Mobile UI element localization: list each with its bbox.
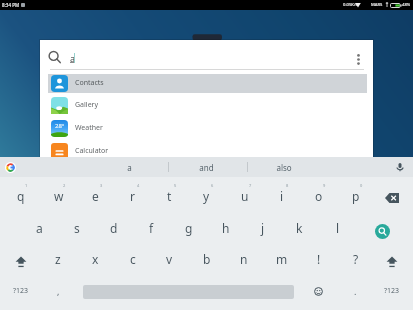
staticText: ?123 bbox=[13, 286, 29, 296]
button[interactable]: and bbox=[168, 157, 244, 177]
button[interactable]: l bbox=[319, 212, 356, 244]
staticText: v bbox=[166, 251, 173, 267]
button[interactable]: Shift bbox=[373, 245, 410, 277]
button[interactable]: q bbox=[2, 180, 39, 212]
button[interactable]: j bbox=[244, 212, 281, 244]
staticText: u bbox=[241, 188, 249, 204]
staticText: Contacts bbox=[75, 78, 104, 88]
staticText: Weather bbox=[75, 123, 103, 133]
staticText: b bbox=[203, 251, 211, 267]
button[interactable]: ?123 bbox=[374, 278, 410, 304]
staticText: and bbox=[199, 162, 214, 173]
button[interactable]: Calculator bbox=[48, 142, 367, 161]
staticText: h bbox=[222, 220, 230, 236]
staticText: c bbox=[130, 251, 136, 267]
button[interactable]: s bbox=[58, 212, 95, 244]
button[interactable]: Emoji bbox=[300, 278, 336, 304]
staticText: Gallery bbox=[75, 100, 99, 110]
button[interactable]: Google bbox=[5, 162, 16, 173]
staticText: 2 bbox=[63, 183, 66, 188]
button[interactable]: z bbox=[39, 243, 76, 275]
button[interactable]: k bbox=[281, 212, 318, 244]
staticText: ?123 bbox=[384, 286, 400, 296]
staticText: 8:34 PM bbox=[2, 2, 20, 8]
staticText: g bbox=[185, 220, 193, 236]
button[interactable]: w bbox=[40, 180, 77, 212]
button[interactable]: Contacts bbox=[48, 74, 367, 93]
staticText: 7 bbox=[249, 183, 252, 188]
staticText: 5 bbox=[174, 183, 177, 188]
button[interactable]: i bbox=[263, 180, 300, 212]
button[interactable]: g bbox=[170, 212, 207, 244]
staticText: o bbox=[315, 188, 323, 204]
button[interactable]: a bbox=[91, 157, 167, 177]
button[interactable]: h bbox=[207, 212, 244, 244]
button[interactable]: y bbox=[188, 180, 225, 212]
staticText: also bbox=[276, 162, 292, 173]
staticText: 1 bbox=[25, 183, 28, 188]
button[interactable]: a bbox=[21, 212, 58, 244]
button[interactable]: t bbox=[151, 180, 188, 212]
staticText: a bbox=[127, 162, 132, 173]
button[interactable]: 28° bbox=[48, 119, 367, 138]
button[interactable]: . bbox=[337, 278, 373, 304]
button[interactable]: r bbox=[114, 180, 151, 212]
button[interactable]: f bbox=[133, 212, 170, 244]
staticText: 0.05K/s bbox=[343, 2, 358, 8]
button[interactable]: ! bbox=[300, 243, 337, 275]
staticText: 48% bbox=[402, 2, 411, 8]
button[interactable]: e bbox=[77, 180, 114, 212]
button[interactable]: ? bbox=[337, 243, 374, 275]
staticText: 0 bbox=[360, 183, 363, 188]
staticText: t bbox=[167, 188, 172, 204]
staticText: 3 bbox=[100, 183, 103, 188]
button[interactable]: b bbox=[188, 243, 225, 275]
staticText: y bbox=[203, 188, 210, 204]
button[interactable]: Voice input bbox=[390, 157, 410, 177]
staticText: 6 bbox=[211, 183, 214, 188]
staticText: d bbox=[110, 220, 118, 236]
staticText: j bbox=[261, 220, 265, 236]
staticText: w bbox=[54, 188, 64, 204]
staticText: ? bbox=[353, 251, 359, 267]
button[interactable]: u bbox=[226, 180, 263, 212]
staticText: . bbox=[354, 285, 357, 297]
button[interactable]: c bbox=[114, 243, 151, 275]
button[interactable]: p bbox=[337, 180, 374, 212]
staticText: q bbox=[17, 188, 25, 204]
staticText: a bbox=[70, 52, 76, 64]
button[interactable]: Backspace bbox=[373, 182, 410, 214]
staticText: MARS bbox=[371, 2, 383, 8]
button[interactable]: Shift bbox=[2, 245, 39, 277]
staticText: Calculator bbox=[75, 146, 109, 156]
staticText: a bbox=[36, 220, 43, 236]
staticText: m bbox=[276, 251, 288, 267]
button[interactable]: Gallery bbox=[48, 96, 367, 115]
button[interactable]: n bbox=[225, 243, 262, 275]
staticText: k bbox=[296, 220, 303, 236]
staticText: s bbox=[74, 220, 80, 236]
button[interactable]: ?123 bbox=[3, 278, 39, 304]
button[interactable]: v bbox=[151, 243, 188, 275]
staticText: 28° bbox=[55, 122, 65, 130]
button[interactable]: More options bbox=[346, 48, 370, 70]
staticText: r bbox=[130, 188, 135, 204]
button[interactable]: also bbox=[246, 157, 322, 177]
button[interactable]: m bbox=[263, 243, 300, 275]
button[interactable]: , bbox=[40, 278, 76, 304]
staticText: e bbox=[92, 188, 99, 204]
staticText: n bbox=[240, 251, 248, 267]
staticText: 4 bbox=[137, 183, 140, 188]
staticText: 8 bbox=[286, 183, 289, 188]
button[interactable]: d bbox=[95, 212, 132, 244]
button[interactable]: o bbox=[300, 180, 337, 212]
button[interactable]: x bbox=[77, 243, 114, 275]
staticText: ! bbox=[317, 251, 321, 267]
staticText: l bbox=[336, 220, 340, 236]
staticText: x bbox=[92, 251, 99, 267]
staticText: 9 bbox=[323, 183, 326, 188]
staticText: , bbox=[57, 285, 60, 297]
button[interactable]: Search bbox=[364, 215, 401, 247]
staticText: i bbox=[280, 188, 284, 204]
